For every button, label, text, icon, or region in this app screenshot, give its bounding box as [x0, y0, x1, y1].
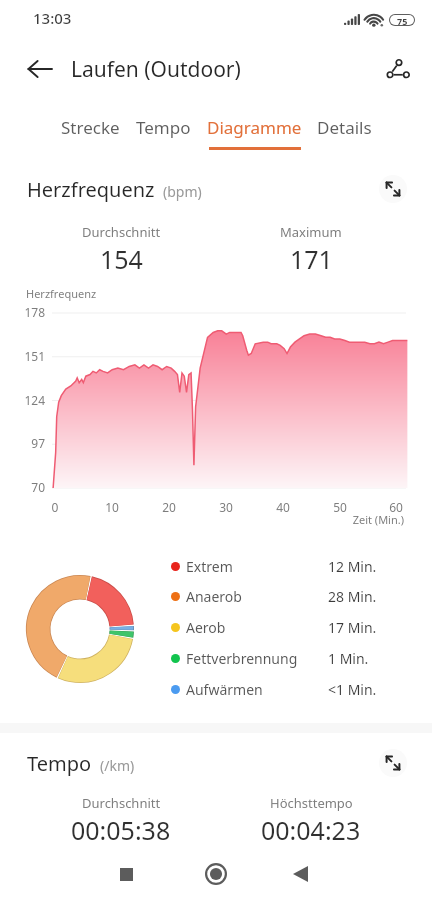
staticText: 171 — [290, 242, 333, 276]
staticText: (bpm) — [163, 182, 202, 201]
staticText: 60 — [376, 499, 416, 515]
staticText: 17 Min. — [328, 618, 377, 637]
staticText: 1 Min. — [328, 649, 369, 668]
staticText: Tempo — [27, 750, 92, 777]
button[interactable]: Anaerob — [168, 581, 400, 611]
staticText: 00:05:38 — [71, 813, 171, 847]
button[interactable]: Tempo — [108, 96, 218, 154]
staticText: Extrem — [186, 557, 233, 576]
button[interactable]: Strecke — [35, 96, 145, 154]
staticText: Zeit (Min.) — [0, 512, 404, 527]
staticText: Herzfrequenz — [26, 286, 97, 301]
button[interactable]: Recent apps — [98, 850, 154, 900]
staticText: Höchsttempo — [270, 794, 353, 812]
staticText: Aerob — [186, 618, 226, 637]
staticText: Strecke — [61, 116, 120, 139]
button[interactable]: Fettverbrennung — [168, 643, 400, 673]
staticText: 178 — [0, 304, 45, 320]
staticText: Durchschnitt — [82, 794, 161, 812]
button[interactable]: Back — [16, 45, 64, 93]
staticText: Laufen (Outdoor) — [71, 55, 241, 84]
staticText: (/km) — [100, 756, 135, 775]
staticText: 28 Min. — [328, 587, 377, 606]
staticText: Tempo — [136, 116, 191, 139]
button[interactable]: Expand — [379, 175, 407, 203]
button[interactable]: Diagramme — [199, 96, 309, 154]
staticText: 30 — [206, 499, 246, 515]
staticText: 97 — [0, 435, 45, 451]
staticText: Anaerob — [186, 587, 242, 606]
button[interactable]: Aerob — [168, 612, 400, 642]
button[interactable]: Extrem — [168, 551, 400, 581]
staticText: 00:04:23 — [261, 813, 361, 847]
staticText: 50 — [320, 499, 360, 515]
staticText: 124 — [0, 392, 45, 408]
staticText: Details — [317, 116, 372, 139]
staticText: 151 — [0, 348, 45, 364]
button[interactable]: Back — [272, 850, 328, 900]
staticText: 10 — [92, 499, 132, 515]
staticText: <1 Min. — [328, 680, 377, 699]
staticText: 20 — [149, 499, 189, 515]
staticText: Fettverbrennung — [186, 649, 298, 668]
button[interactable]: Aufwärmen — [168, 674, 400, 704]
staticText: Diagramme — [207, 116, 302, 139]
staticText: Durchschnitt — [82, 223, 161, 241]
button[interactable]: Details — [289, 96, 399, 154]
button[interactable]: Share — [376, 47, 420, 91]
staticText: 0 — [35, 499, 75, 515]
staticText: Herzfrequenz — [27, 176, 155, 203]
button[interactable]: Expand — [379, 749, 407, 777]
button[interactable]: Home — [188, 850, 244, 900]
staticText: 13:03 — [33, 8, 72, 28]
staticText: 40 — [263, 499, 303, 515]
staticText: 75 — [397, 15, 408, 25]
staticText: 12 Min. — [328, 557, 377, 576]
staticText: Maximum — [280, 223, 342, 241]
staticText: Aufwärmen — [186, 680, 263, 699]
staticText: 154 — [100, 242, 143, 276]
staticText: 70 — [0, 479, 45, 495]
